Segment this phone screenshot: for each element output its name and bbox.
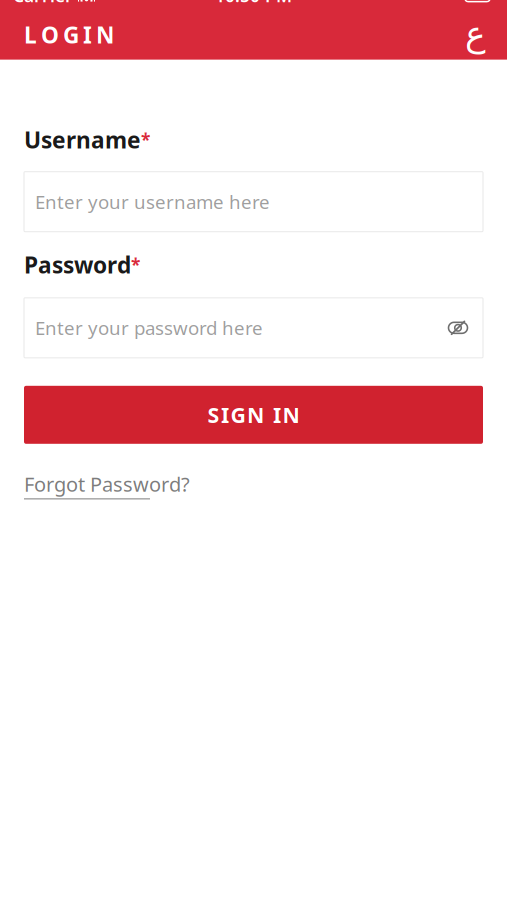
staticText: Carrier	[13, 0, 73, 7]
staticText: 10:50 PM	[215, 0, 292, 7]
staticText: N	[282, 401, 299, 429]
staticText: G	[63, 20, 79, 50]
staticText: I	[221, 401, 229, 429]
button[interactable]: S	[24, 386, 483, 444]
staticText: I	[83, 20, 92, 50]
button[interactable]: Forgot Password?	[24, 471, 190, 499]
button[interactable]: Switch language to Arabic	[453, 13, 497, 57]
staticText: *	[131, 253, 140, 276]
staticText: S	[207, 401, 219, 429]
staticText: Forgot Password?	[24, 471, 190, 497]
staticText: G	[230, 401, 245, 429]
staticText: ع	[464, 15, 485, 54]
staticText: *	[141, 128, 150, 151]
staticText: N	[247, 401, 264, 429]
button[interactable]: Show password	[441, 308, 475, 348]
staticText: L	[24, 20, 37, 50]
staticText: I	[273, 401, 281, 429]
staticText: N	[96, 20, 114, 50]
staticText: Enter your username here	[35, 189, 270, 214]
staticText: Password	[24, 250, 131, 280]
staticText: Username	[24, 125, 141, 155]
staticText: Enter your password here	[35, 315, 263, 340]
staticText: O	[41, 20, 59, 50]
